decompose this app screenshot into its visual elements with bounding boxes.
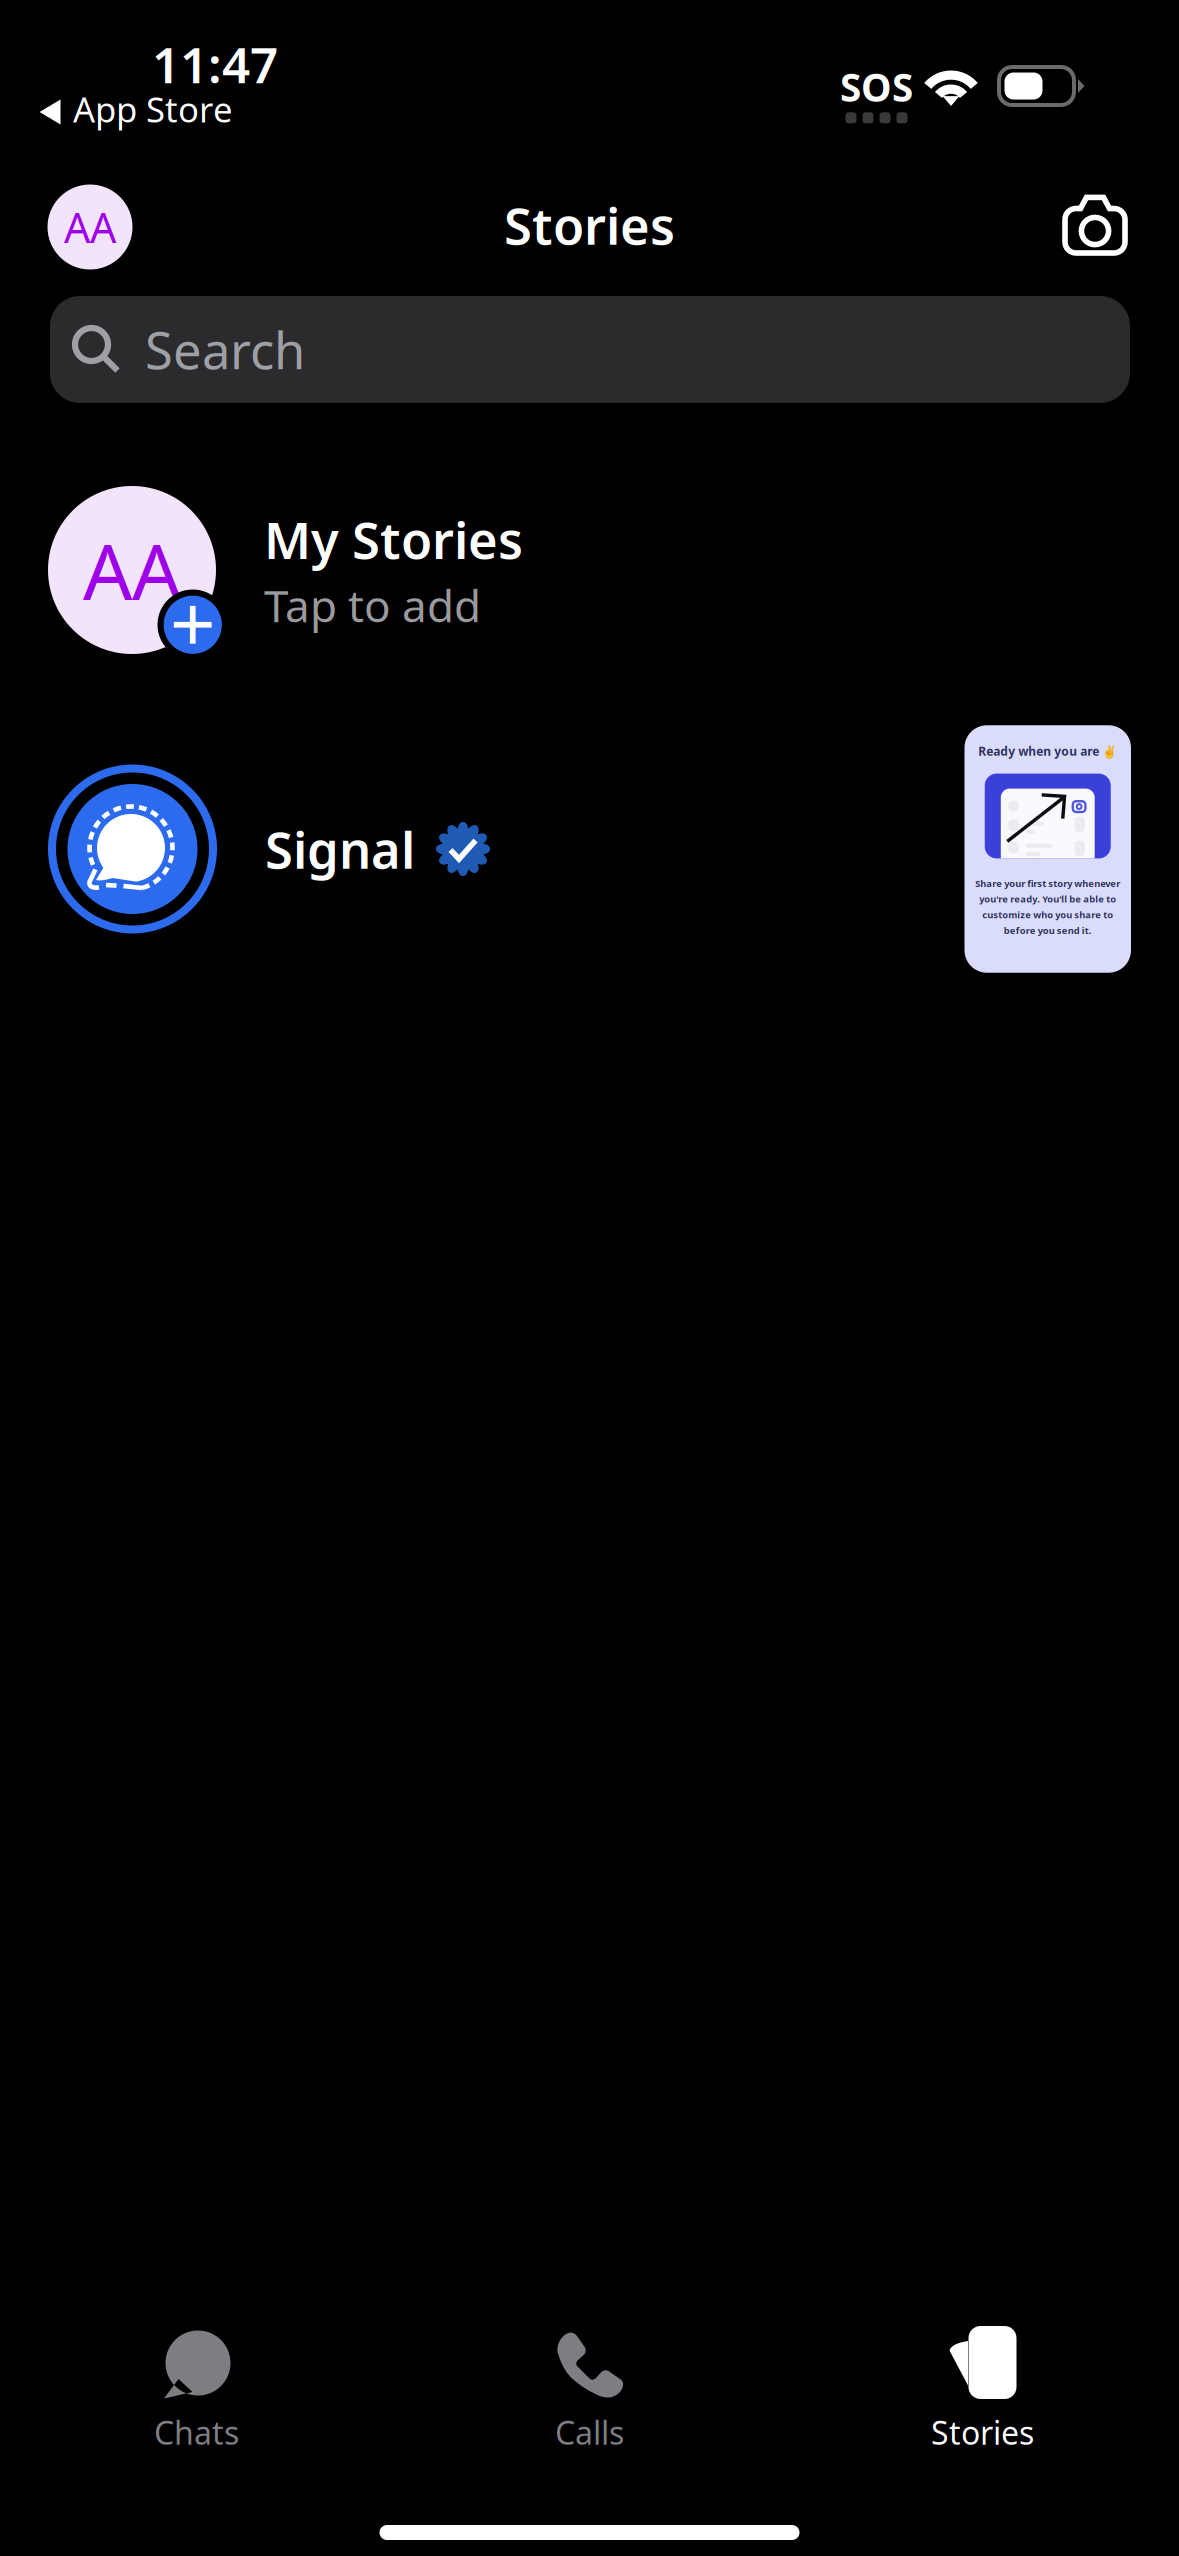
staticText: Ready when you are ✌️ — [978, 743, 1117, 759]
staticText: Signal — [265, 815, 415, 883]
staticText: Calls — [555, 2411, 624, 2453]
staticText: App Store — [73, 86, 233, 132]
button[interactable]: Signal — [48, 705, 1179, 993]
staticText: AA — [83, 519, 181, 621]
staticText: Chats — [154, 2411, 239, 2453]
staticText: SOS — [840, 61, 913, 112]
staticText: My Stories — [264, 506, 523, 573]
staticText: Stories — [931, 2411, 1034, 2453]
button[interactable]: Camera — [1029, 159, 1161, 291]
staticText: you're ready. You'll be able to — [979, 893, 1116, 905]
button[interactable]: App Store — [32, 90, 239, 134]
staticText: Search — [145, 316, 305, 383]
staticText: Tap to add — [264, 576, 481, 634]
button[interactable]: Stories — [786, 2311, 1179, 2465]
staticText: Stories — [504, 191, 675, 259]
button[interactable]: Chats — [0, 2311, 393, 2465]
staticText: 11:47 — [152, 31, 278, 97]
button[interactable]: Search — [50, 296, 1130, 403]
staticText: Share your first story whenever — [975, 877, 1120, 889]
staticText: customize who you share to — [982, 908, 1113, 921]
staticText: AA — [64, 200, 116, 254]
staticText: before you send it. — [1004, 924, 1092, 937]
button[interactable]: Calls — [393, 2311, 786, 2465]
button[interactable]: Profile — [24, 161, 156, 293]
button[interactable]: AA — [48, 456, 1179, 684]
